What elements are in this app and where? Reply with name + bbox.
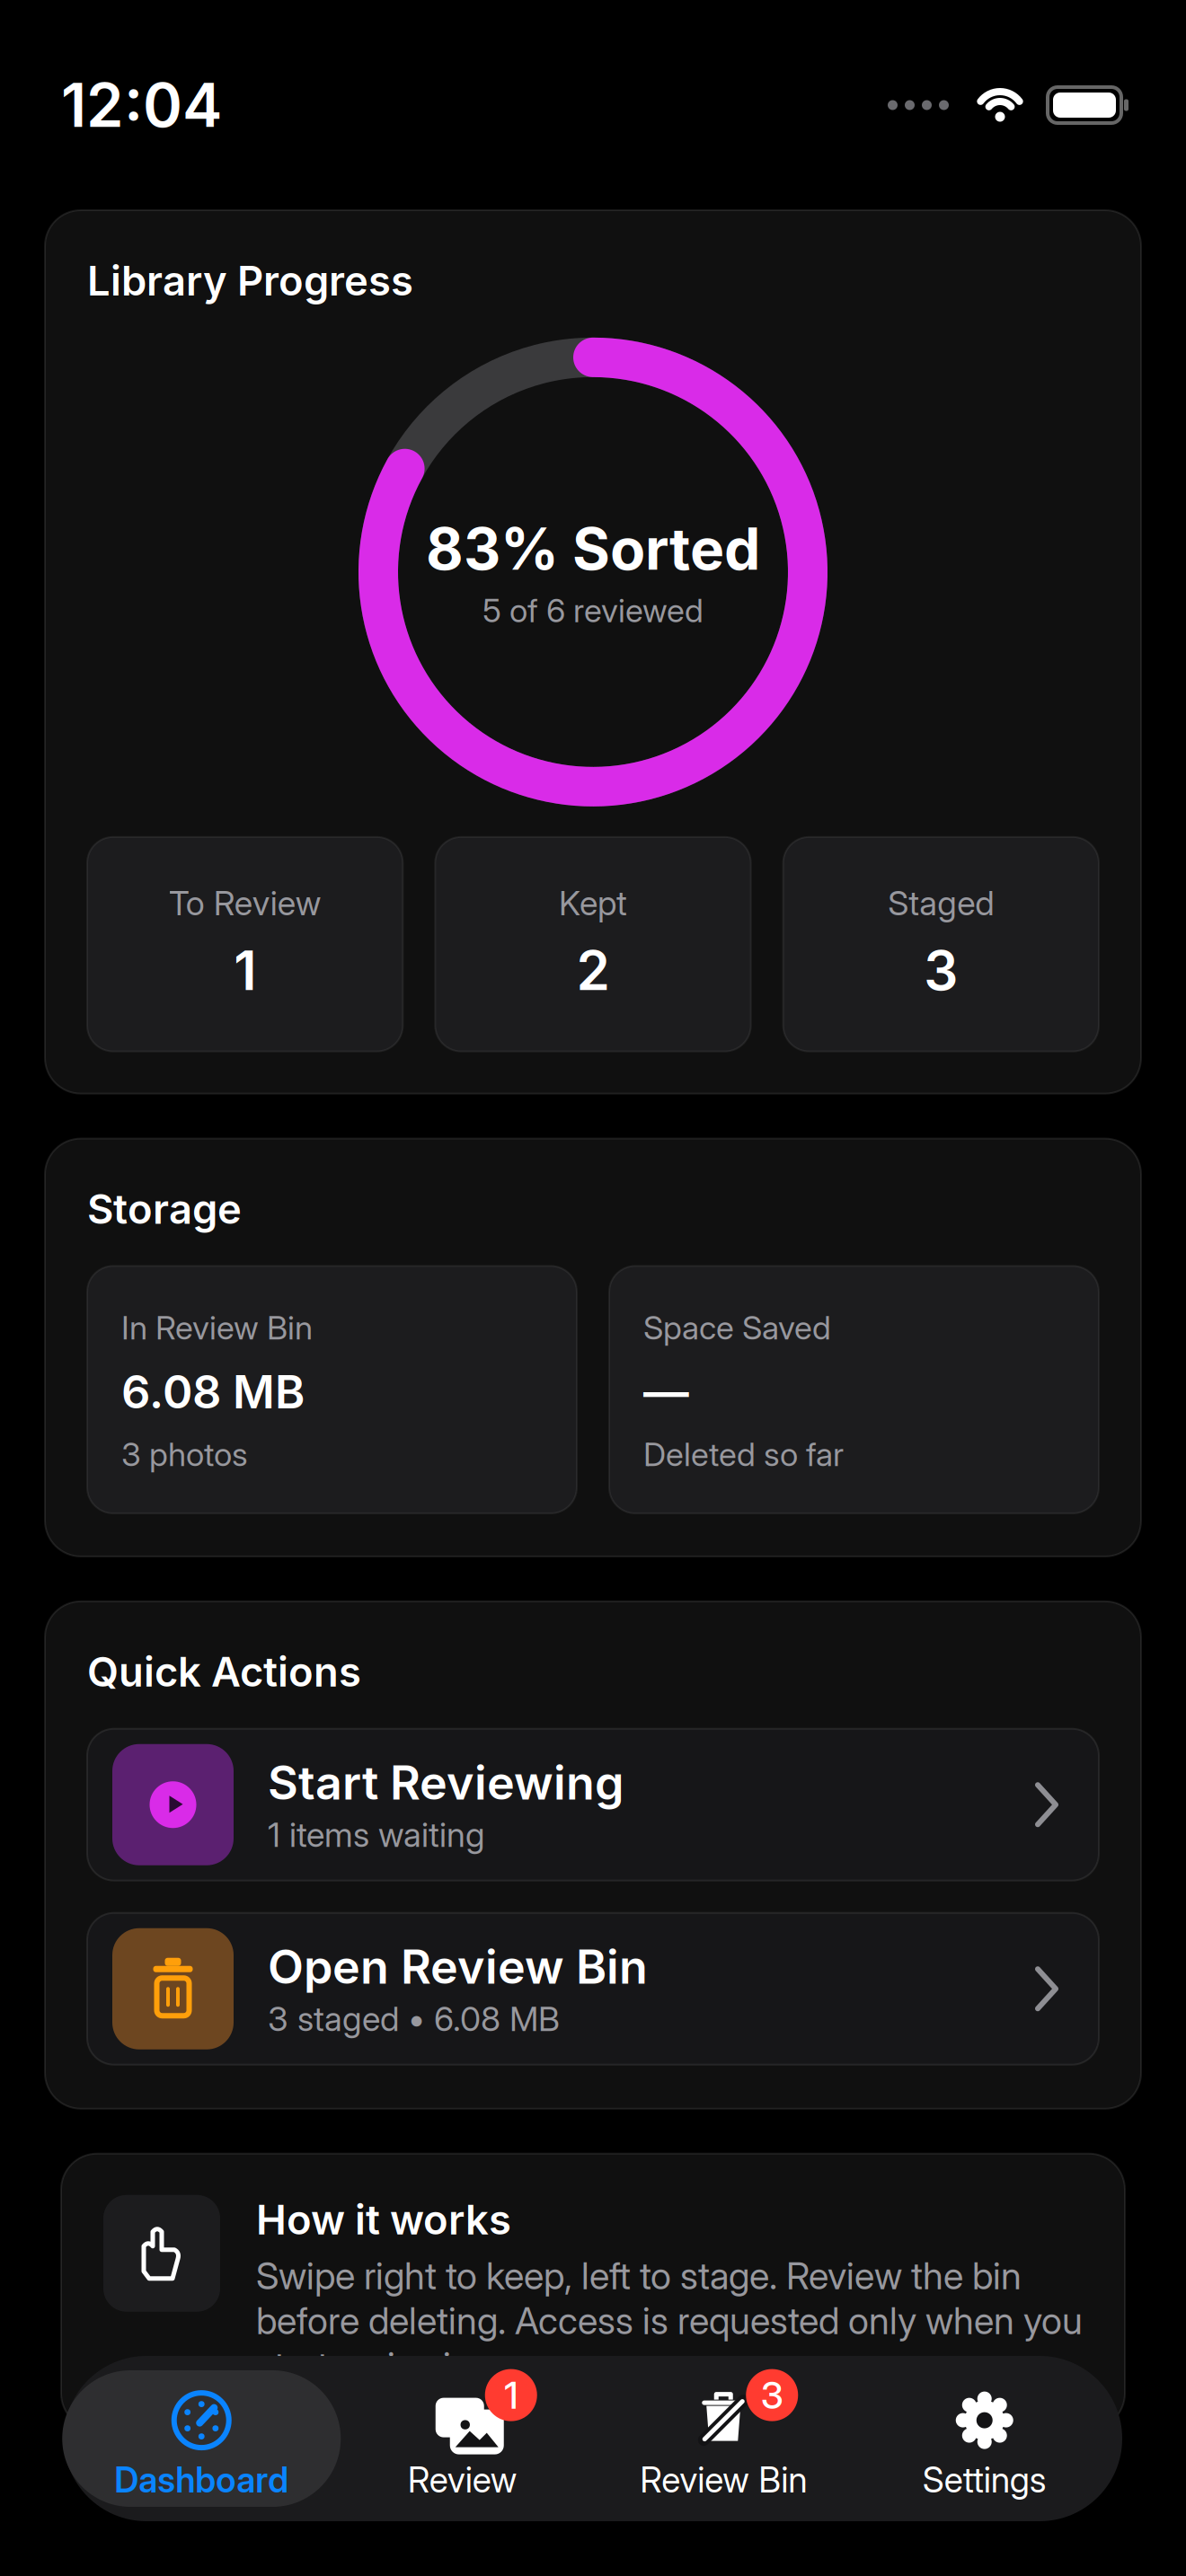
staticText: In Review Bin	[121, 1308, 313, 1347]
staticText: Kept	[559, 883, 627, 923]
button[interactable]: 1	[332, 2370, 593, 2507]
staticText: Review Bin	[640, 2459, 807, 2501]
button[interactable]: Settings	[854, 2370, 1115, 2507]
button[interactable]: Start Reviewing	[87, 1729, 1099, 1881]
staticText: Review	[408, 2459, 517, 2501]
staticText: How it works	[256, 2195, 511, 2244]
staticText: 5 of 6 reviewed	[482, 591, 704, 630]
staticText: 6.08 MB	[121, 1364, 305, 1419]
button[interactable]: Dashboard	[71, 2370, 332, 2507]
staticText: Library Progress	[87, 256, 413, 305]
staticText: 2	[576, 938, 610, 1003]
staticText: Deleted so far	[643, 1435, 844, 1474]
staticText: 1 items waiting	[268, 1814, 485, 1855]
staticText: Staged	[888, 883, 994, 923]
staticText: 3	[924, 938, 958, 1003]
staticText: 3 staged • 6.08 MB	[268, 1999, 560, 2039]
button[interactable]: 3	[593, 2370, 854, 2507]
staticText: 12:04	[61, 69, 222, 141]
staticText: Settings	[923, 2459, 1047, 2501]
staticText: 83% Sorted	[426, 514, 760, 584]
staticText: Start Reviewing	[268, 1754, 624, 1811]
button[interactable]: Open Review Bin	[87, 1913, 1099, 2065]
staticText: To Review	[169, 883, 321, 923]
staticText: 3	[761, 2373, 783, 2418]
staticText: Open Review Bin	[268, 1938, 648, 1995]
staticText: Space Saved	[643, 1308, 831, 1347]
staticText: Quick Actions	[87, 1647, 361, 1696]
staticText: 1	[234, 938, 256, 1003]
staticText: Swipe right to keep, left to stage. Revi…	[256, 2253, 1083, 2388]
staticText: 1	[504, 2373, 518, 2418]
staticText: Storage	[87, 1184, 242, 1234]
staticText: Dashboard	[114, 2459, 289, 2501]
staticText: —	[643, 1364, 689, 1419]
staticText: 3 photos	[121, 1435, 248, 1474]
